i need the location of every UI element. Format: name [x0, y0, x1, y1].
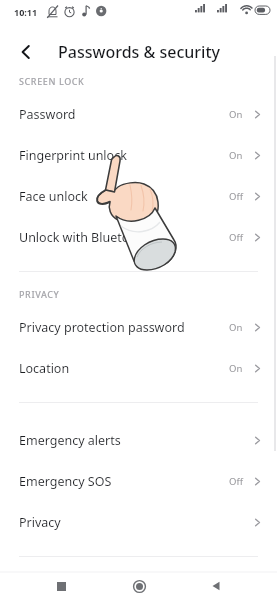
staticText: Privacy — [19, 514, 252, 531]
staticText: On — [229, 108, 243, 121]
staticText: Unlock with Bluetooth — [19, 229, 229, 246]
button[interactable]: Emergency alerts — [0, 420, 277, 461]
button[interactable]: Fingerprint unlock — [0, 135, 277, 176]
staticText: On — [229, 149, 243, 162]
staticText: On — [229, 321, 243, 334]
staticText: Off — [229, 475, 243, 488]
button[interactable]: Emergency SOS — [0, 461, 277, 502]
staticText: Passwords & security — [58, 41, 220, 63]
staticText: Emergency alerts — [19, 432, 252, 449]
staticText: Password — [19, 106, 229, 123]
button[interactable]: Unlock with Bluetooth — [0, 217, 277, 258]
staticText: PRIVACY — [19, 288, 60, 300]
button[interactable]: Password — [0, 94, 277, 135]
staticText: 10:11 — [14, 6, 38, 18]
button[interactable]: Home — [122, 572, 156, 600]
button[interactable]: Face unlock — [0, 176, 277, 217]
staticText: Location — [19, 360, 229, 377]
button[interactable]: Privacy — [0, 502, 277, 543]
staticText: Fingerprint unlock — [19, 147, 229, 164]
staticText: Privacy protection password — [19, 319, 229, 336]
button[interactable]: Back — [199, 572, 233, 600]
staticText: Face unlock — [19, 188, 229, 205]
staticText: Off — [229, 190, 243, 203]
button[interactable]: Location — [0, 348, 277, 389]
staticText: Off — [229, 231, 243, 244]
button[interactable]: Privacy protection password — [0, 307, 277, 348]
staticText: SCREEN LOCK — [19, 75, 85, 87]
staticText: Emergency SOS — [19, 473, 229, 490]
button[interactable]: Back — [8, 34, 44, 70]
button[interactable]: Recents — [44, 572, 78, 600]
staticText: On — [229, 362, 243, 375]
